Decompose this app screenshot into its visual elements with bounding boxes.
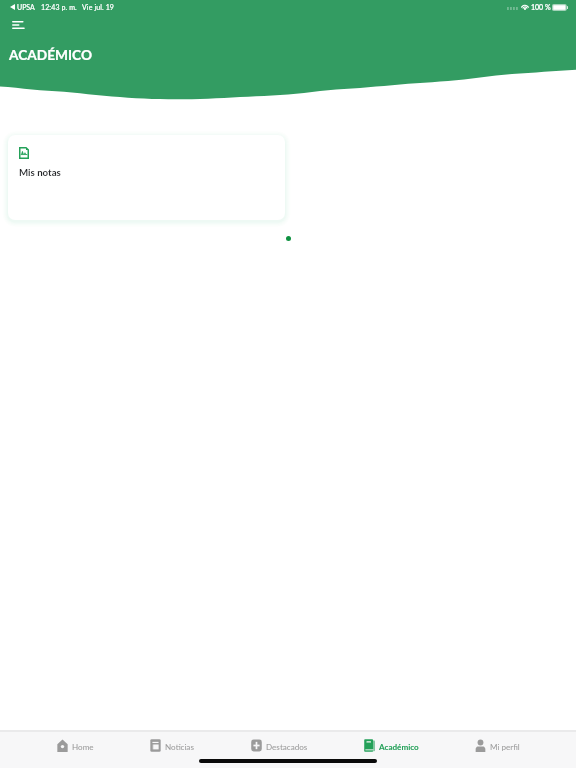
staticText: 100 % — [531, 3, 551, 11]
button[interactable]: Mis notas — [8, 135, 285, 220]
button[interactable]: Mi perfil — [475, 732, 520, 768]
staticText: Noticias — [165, 742, 194, 752]
button[interactable]: Open navigation menu — [6, 13, 30, 37]
staticText: 12:43 p. m. — [41, 3, 77, 11]
button[interactable]: Destacados — [251, 732, 308, 768]
staticText: UPSA — [17, 3, 35, 11]
staticText: Mis notas — [19, 166, 61, 178]
staticText: Mi perfil — [490, 742, 520, 752]
staticText: Vie jul. 19 — [82, 3, 115, 11]
button[interactable]: Noticias — [150, 732, 194, 768]
staticText: Académico — [379, 742, 419, 752]
staticText: Destacados — [266, 742, 308, 752]
staticText: Home — [72, 742, 94, 752]
button[interactable]: Home — [57, 732, 94, 768]
staticText: ACADÉMICO — [9, 46, 92, 62]
button[interactable]: Académico — [364, 732, 419, 768]
